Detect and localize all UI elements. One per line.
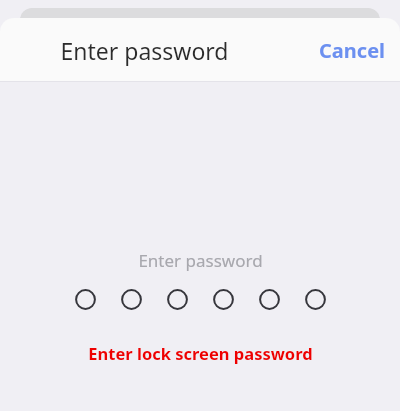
staticText: Enter password: [138, 249, 263, 272]
staticText: Cancel: [319, 37, 386, 64]
button[interactable]: Password entry field: [0, 243, 400, 318]
staticText: Enter lock screen password: [88, 342, 313, 364]
button[interactable]: Cancel: [305, 27, 400, 74]
staticText: Enter password: [60, 35, 229, 66]
